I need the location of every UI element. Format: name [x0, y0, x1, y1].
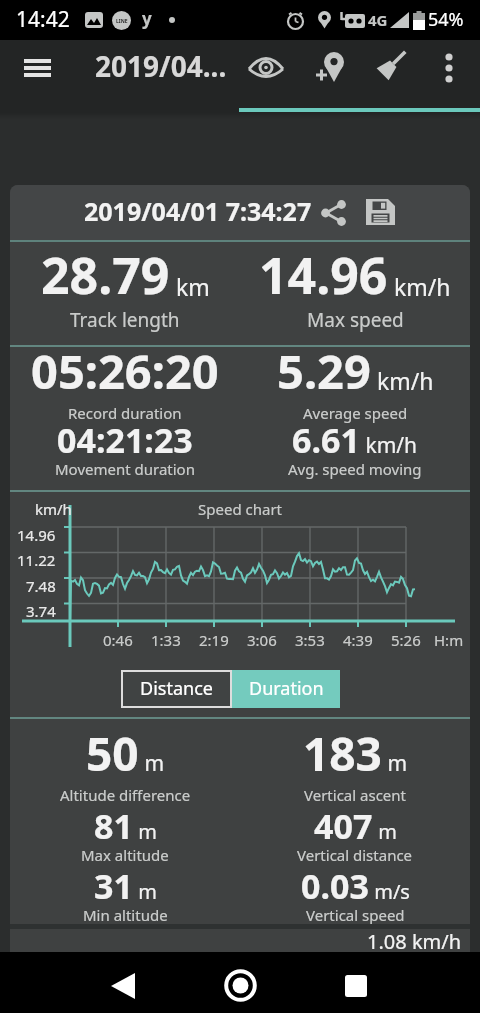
staticText: Vertical speed	[306, 907, 405, 924]
staticText: 3.74	[26, 603, 56, 620]
staticText: Max speed	[307, 310, 404, 332]
button[interactable]: 14.96	[240, 249, 470, 332]
staticText: 3:06	[247, 632, 277, 649]
staticText: 54%	[428, 10, 464, 31]
button[interactable]	[303, 40, 359, 96]
button[interactable]	[95, 952, 151, 1013]
button[interactable]: 81	[10, 808, 240, 864]
staticText: m	[133, 881, 157, 904]
staticText: y	[142, 10, 152, 30]
staticText: 2:19	[199, 632, 229, 649]
button[interactable]: 5.29	[240, 347, 470, 478]
staticText: 31	[94, 868, 133, 907]
button[interactable]: 0.03	[240, 868, 470, 924]
staticText: Distance	[140, 679, 213, 700]
staticText: m	[373, 821, 397, 844]
staticText: 28.79	[41, 249, 170, 307]
staticText: 7.48	[26, 578, 56, 595]
staticText: 3:53	[295, 632, 325, 649]
staticText: 0:46	[103, 632, 133, 649]
staticText: 4:39	[343, 632, 373, 649]
button[interactable]: 183	[240, 729, 470, 804]
button[interactable]	[212, 952, 268, 1013]
staticText: Movement duration	[55, 461, 195, 478]
button[interactable]: Distance	[121, 670, 232, 708]
staticText: Vertical distance	[297, 847, 413, 864]
staticText: m	[133, 821, 157, 844]
staticText: Avg. speed moving	[288, 461, 422, 478]
button[interactable]	[364, 196, 397, 229]
staticText: LINE	[116, 18, 128, 24]
button[interactable]: 2019/04/01 7:34:27	[10, 185, 470, 240]
button[interactable]: 28.79	[10, 249, 240, 332]
button[interactable]	[238, 40, 294, 96]
staticText: 04:21:23	[57, 422, 193, 461]
staticText: Altitude difference	[60, 787, 191, 804]
staticText: m	[382, 752, 408, 776]
staticText: km/h	[360, 434, 418, 458]
staticText: km/h	[35, 501, 72, 518]
staticText: 05:26:20	[31, 347, 219, 401]
staticText: m/s	[369, 881, 410, 904]
staticText: 2019/04...	[95, 52, 227, 84]
staticText: 183	[303, 729, 382, 782]
staticText: Average speed	[303, 405, 408, 422]
staticText: Track length	[70, 310, 180, 332]
button[interactable]: 50	[10, 729, 240, 804]
staticText: 4G	[368, 12, 388, 29]
staticText: H:m	[434, 632, 464, 649]
staticText: 1.08 km/h	[367, 931, 462, 952]
button[interactable]: 407	[240, 808, 470, 864]
button[interactable]	[24, 59, 51, 77]
button[interactable]	[429, 40, 469, 96]
staticText: 407	[314, 808, 373, 847]
staticText: km/h	[388, 275, 451, 301]
staticText: m	[139, 752, 165, 776]
staticText: 14.96	[259, 249, 388, 307]
staticText: Speed chart	[198, 501, 283, 518]
staticText: 14.96	[17, 527, 56, 544]
button[interactable]: 31	[10, 868, 240, 924]
button[interactable]	[328, 952, 384, 1013]
staticText: km/h	[371, 369, 434, 395]
staticText: Max altitude	[81, 847, 169, 864]
staticText: 5:26	[391, 632, 421, 649]
staticText: 0.03	[301, 868, 369, 907]
staticText: 81	[94, 808, 133, 847]
button[interactable]: 05:26:20	[10, 347, 240, 478]
staticText: Vertical ascent	[304, 787, 406, 804]
staticText: 14:42	[16, 8, 70, 32]
button[interactable]	[321, 200, 347, 226]
staticText: 6.61	[292, 422, 360, 461]
button[interactable]: km/h	[10, 492, 470, 664]
button[interactable]: Duration	[232, 670, 340, 708]
staticText: Record duration	[68, 405, 182, 422]
staticText: 2019/04/01 7:34:27	[84, 198, 312, 227]
staticText: 5.29	[277, 347, 371, 401]
staticText: Min altitude	[83, 907, 168, 924]
staticText: 11.22	[17, 552, 56, 569]
staticText: 1:33	[151, 632, 181, 649]
staticText: km	[170, 275, 210, 301]
staticText: 50	[86, 729, 139, 782]
staticText: Duration	[249, 679, 324, 700]
button[interactable]	[361, 40, 417, 96]
